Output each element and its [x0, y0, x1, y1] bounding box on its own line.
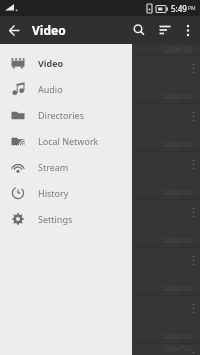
button[interactable]: Audio	[0, 76, 132, 102]
staticText: Video	[38, 57, 64, 69]
button[interactable]: Search	[126, 16, 152, 44]
staticText: Local Network	[38, 135, 99, 147]
button[interactable]: Item options	[186, 200, 200, 247]
staticText: Directories	[38, 109, 84, 121]
staticText: History	[38, 187, 69, 199]
staticText: 1280x720	[162, 344, 192, 353]
staticText: ...envilla -	[66, 110, 104, 122]
button[interactable]: Item options	[186, 56, 200, 103]
button[interactable]: Back	[0, 16, 28, 44]
staticText: ...lek Edit)...	[66, 219, 112, 231]
staticText: 1280x720	[162, 332, 192, 341]
staticText: 1280x720	[162, 92, 192, 101]
button[interactable]: ...ckface	[0, 152, 200, 199]
button[interactable]: ...roid	[0, 344, 200, 355]
button[interactable]: Video	[0, 50, 132, 76]
staticText: 5:49	[171, 3, 187, 14]
button[interactable]: Directories	[0, 102, 132, 128]
staticText: Settings	[38, 213, 73, 225]
staticText: Audio	[38, 83, 63, 95]
staticText: 1280x720	[162, 188, 192, 197]
button[interactable]: Item options	[186, 296, 200, 343]
button[interactable]: ...envilla -	[0, 104, 200, 151]
button[interactable]: Sort	[152, 16, 178, 44]
button[interactable]: Item options	[186, 152, 200, 199]
staticText: Stream	[38, 161, 69, 173]
button[interactable]: More options	[178, 16, 198, 44]
staticText: 1280x720	[162, 45, 192, 54]
button[interactable]: ...lliyan	[0, 296, 200, 343]
button[interactable]: Item options	[186, 344, 200, 355]
button[interactable]: ...lace	[0, 200, 200, 247]
staticText: Video	[32, 22, 66, 38]
button[interactable]: ...mir's	[0, 248, 200, 295]
button[interactable]: Stream	[0, 154, 132, 180]
staticText: 1280x720	[162, 236, 192, 245]
staticText: 1280x720	[162, 140, 192, 149]
button[interactable]: Local Network	[0, 128, 132, 154]
button[interactable]: Thinking	[0, 56, 200, 103]
staticText: ...ckface	[66, 158, 99, 170]
button[interactable]: Settings	[0, 206, 132, 232]
button[interactable]: Item options	[186, 248, 200, 295]
staticText: PM	[188, 5, 196, 12]
button[interactable]: Item options	[186, 104, 200, 151]
staticText: 1280x720	[162, 284, 192, 293]
button[interactable]: History	[0, 180, 132, 206]
